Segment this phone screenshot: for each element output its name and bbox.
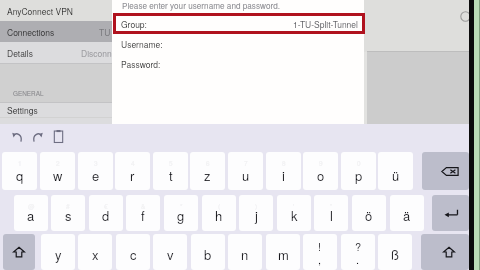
button[interactable]: Group: (113, 13, 365, 34)
button[interactable]: " (314, 195, 348, 231)
button[interactable]: € (89, 195, 123, 231)
button[interactable]: Username: (112, 34, 364, 54)
button[interactable]: ä (390, 195, 424, 231)
staticText: t (169, 166, 173, 185)
button[interactable]: Info (460, 11, 471, 22)
button[interactable]: ) (239, 195, 273, 231)
button[interactable]: 6 (190, 152, 225, 190)
button[interactable]: , (303, 234, 337, 270)
staticText: ß (391, 245, 399, 264)
staticText: m (278, 245, 289, 264)
staticText: 1-TU-Split-Tunnel (293, 18, 358, 30)
staticText: Username: (121, 38, 163, 50)
staticText: u (242, 166, 250, 185)
staticText: v (167, 245, 174, 264)
staticText: ? (355, 238, 362, 254)
button[interactable]: ' (277, 195, 311, 231)
button[interactable]: 4 (115, 152, 150, 190)
button[interactable]: Shift right (421, 234, 469, 270)
button[interactable]: ü (378, 152, 413, 190)
staticText: c (130, 245, 137, 264)
staticText: Details (7, 47, 33, 59)
button[interactable]: 8 (266, 152, 301, 190)
button[interactable]: AnyConnect VPN (0, 0, 112, 21)
staticText: 8 (282, 159, 286, 168)
button[interactable]: v (153, 234, 187, 270)
staticText: TU (99, 26, 111, 38)
button[interactable]: Undo (12, 131, 23, 142)
button[interactable]: ( (202, 195, 236, 231)
button[interactable]: & (126, 195, 160, 231)
staticText: @ (28, 202, 35, 211)
staticText: b (204, 245, 212, 264)
button[interactable]: Connections (0, 21, 112, 42)
staticText: f (141, 206, 145, 225)
staticText: r (130, 166, 135, 185)
button[interactable]: 3 (78, 152, 113, 190)
button[interactable]: Paste (53, 130, 64, 143)
staticText: Disconn (81, 47, 112, 59)
staticText: j (255, 206, 258, 225)
staticText: g (177, 206, 185, 225)
staticText: AnyConnect VPN (7, 5, 73, 17)
staticText: ü (392, 166, 400, 185)
button[interactable]: y (41, 234, 75, 270)
button[interactable]: n (228, 234, 262, 270)
staticText: Connections (7, 26, 55, 38)
staticText: ö (365, 206, 373, 225)
staticText: 5 (169, 159, 173, 168)
button[interactable]: 7 (228, 152, 263, 190)
button[interactable]: c (116, 234, 150, 270)
staticText: d (102, 206, 110, 225)
button[interactable]: Details (0, 42, 112, 63)
button[interactable]: Backspace (422, 152, 469, 190)
button[interactable]: . (341, 234, 375, 270)
button[interactable]: 0 (341, 152, 376, 190)
button[interactable]: * (164, 195, 198, 231)
staticText: 6 (206, 159, 210, 168)
button[interactable]: b (191, 234, 225, 270)
button[interactable]: Return (432, 195, 469, 231)
staticText: y (55, 245, 62, 264)
button[interactable]: 9 (303, 152, 338, 190)
staticText: l (330, 206, 333, 225)
staticText: 9 (319, 159, 323, 168)
button[interactable]: ß (378, 234, 412, 270)
staticText: p (355, 166, 363, 185)
staticText: # (66, 202, 70, 211)
button[interactable]: @ (14, 195, 48, 231)
button[interactable]: 1 (2, 152, 37, 190)
staticText: € (104, 202, 108, 211)
staticText: a (27, 206, 35, 225)
staticText: 7 (244, 159, 248, 168)
button[interactable]: # (51, 195, 85, 231)
button[interactable]: Shift (3, 234, 35, 270)
staticText: n (241, 245, 249, 264)
staticText: h (215, 206, 223, 225)
staticText: o (317, 166, 325, 185)
staticText: ä (403, 206, 411, 225)
staticText: Please enter your username and password. (122, 0, 280, 12)
button[interactable]: x (78, 234, 112, 270)
staticText: s (65, 206, 72, 225)
button[interactable]: ö (352, 195, 386, 231)
staticText: i (282, 166, 285, 185)
button[interactable]: Settings (0, 103, 112, 117)
button[interactable]: Redo (32, 131, 43, 142)
staticText: 0 (357, 159, 361, 168)
button[interactable]: Password: (112, 54, 364, 74)
staticText: w (53, 166, 63, 185)
staticText: e (92, 166, 100, 185)
staticText: q (16, 166, 24, 185)
staticText: k (291, 206, 298, 225)
staticText: 1 (18, 159, 22, 168)
button[interactable]: m (266, 234, 300, 270)
staticText: , (318, 251, 322, 267)
staticText: 3 (94, 159, 98, 168)
button[interactable]: 2 (40, 152, 75, 190)
button[interactable]: 5 (153, 152, 188, 190)
staticText: GENERAL (13, 89, 44, 98)
staticText: . (356, 251, 360, 267)
